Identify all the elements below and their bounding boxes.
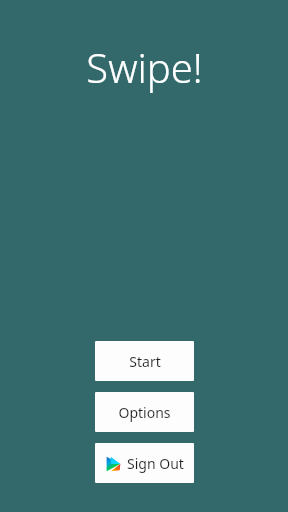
- button[interactable]: Sign Out: [95, 443, 194, 483]
- staticText: Options: [118, 403, 171, 422]
- button[interactable]: Start: [95, 341, 194, 381]
- staticText: Sign Out: [127, 454, 184, 473]
- staticText: Start: [129, 352, 161, 371]
- button[interactable]: Options: [95, 392, 194, 432]
- staticText: Swipe!: [86, 40, 203, 94]
